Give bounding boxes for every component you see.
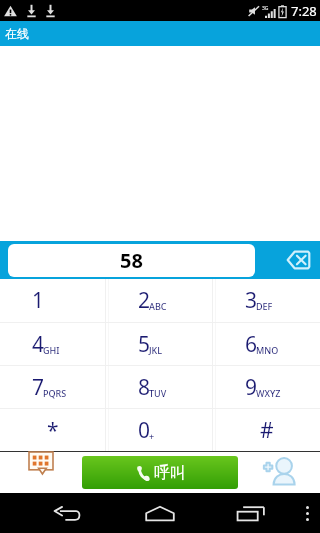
staticText: 8 (138, 373, 151, 402)
button[interactable]: 0 (106, 409, 213, 451)
staticText: 7:28 (291, 2, 317, 20)
staticText: TUV (149, 387, 167, 399)
button[interactable]: Recents (230, 496, 272, 530)
button[interactable]: 1 (0, 279, 106, 322)
staticText: WXYZ (256, 387, 281, 399)
button[interactable]: 2 (106, 279, 213, 322)
staticText: 6 (245, 330, 258, 359)
staticText: 0 (138, 416, 151, 445)
staticText: * (47, 416, 59, 445)
staticText: + (149, 430, 155, 442)
staticText: 3G (262, 5, 269, 12)
button[interactable]: Add contact (240, 451, 320, 493)
staticText: 3 (245, 286, 258, 315)
button[interactable]: Home (139, 496, 181, 530)
staticText: 2 (138, 286, 151, 315)
button[interactable]: Backspace (255, 241, 320, 279)
staticText: ABC (149, 300, 167, 312)
staticText: 4 (32, 330, 45, 359)
staticText: # (260, 416, 274, 445)
staticText: 1 (32, 286, 45, 315)
button[interactable]: Keypad (0, 451, 80, 493)
staticText: 9 (245, 373, 258, 402)
staticText: MNO (256, 344, 279, 356)
button[interactable]: 呼叫 (82, 456, 238, 489)
button[interactable]: More options (294, 496, 320, 530)
button[interactable]: 58 (8, 244, 255, 277)
button[interactable]: 7 (0, 366, 106, 408)
button[interactable]: 3 (213, 279, 320, 322)
button[interactable]: * (0, 409, 106, 451)
staticText: JKL (149, 344, 163, 356)
staticText: 在线 (5, 26, 29, 41)
staticText: PQRS (43, 387, 67, 399)
staticText: 58 (120, 247, 143, 274)
button[interactable]: Back (46, 496, 88, 530)
button[interactable]: 8 (106, 366, 213, 408)
staticText: 7 (32, 373, 45, 402)
staticText: 5 (138, 330, 151, 359)
button[interactable]: # (213, 409, 320, 451)
staticText: 呼叫 (154, 463, 186, 483)
button[interactable]: 9 (213, 366, 320, 408)
staticText: DEF (256, 300, 273, 312)
button[interactable]: 5 (106, 323, 213, 365)
button[interactable]: 4 (0, 323, 106, 365)
button[interactable]: 6 (213, 323, 320, 365)
staticText: GHI (43, 344, 60, 356)
